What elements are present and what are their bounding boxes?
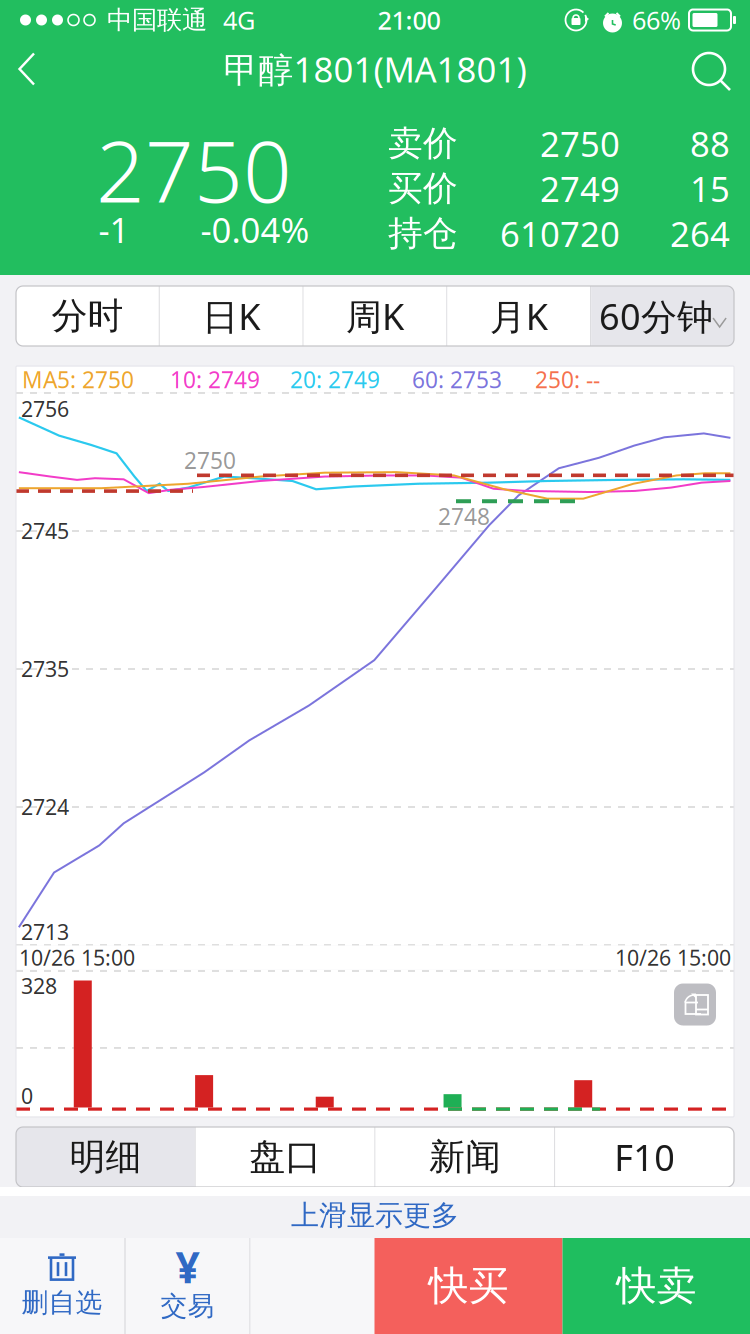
staticText: 甲醇1801(MA1801) [223,46,526,92]
staticText: 2756 [21,394,69,423]
staticText: 21:00 [377,3,440,37]
staticText: MA5: 2750 [22,364,134,394]
staticText: ¥ [175,1238,199,1295]
staticText: 盘口 [249,1135,321,1179]
button[interactable]: ¥ [125,1238,249,1334]
button[interactable]: 盘口 [196,1127,375,1187]
staticText: 卖价 [388,122,458,165]
staticText: -1 [98,206,129,252]
button[interactable]: 快买 [374,1238,562,1334]
staticText: 新闻 [429,1135,501,1179]
staticText: 2750 [96,113,292,226]
staticText: 60: 2753 [412,364,502,394]
staticText: 10/26 15:00 [19,943,135,972]
staticText: 2749 [540,165,620,211]
staticText: 月K [490,292,548,340]
staticText: 买价 [388,167,458,210]
staticText: F10 [614,1133,675,1181]
staticText: 明细 [69,1135,141,1179]
staticText: 10: 2749 [170,364,260,394]
staticText: 66% [632,3,681,37]
button[interactable]: 月K [447,286,590,346]
staticText: 10/26 15:00 [615,943,731,972]
staticText: 15 [690,165,730,211]
staticText: 2713 [21,917,69,946]
button[interactable]: Rotate to landscape [674,983,716,1025]
staticText: 2745 [21,516,69,545]
button[interactable]: 日K [160,286,303,346]
staticText: 250: -- [535,364,600,394]
button[interactable]: 上滑显示更多 [0,1196,750,1235]
staticText: 60分钟 [599,292,713,340]
staticText: 0 [21,1081,33,1110]
button[interactable]: Search [670,40,750,98]
staticText: 上滑显示更多 [291,1198,459,1233]
button[interactable]: F10 [555,1127,734,1187]
staticText: 2748 [438,501,490,531]
staticText: 周K [346,292,404,340]
staticText: 持仓 [388,212,458,255]
staticText: 2724 [21,792,69,821]
staticText: 4G [223,3,255,37]
button[interactable]: 删自选 [0,1238,124,1334]
staticText: 2750 [184,445,236,475]
button[interactable]: 分时 [16,286,159,346]
staticText: 610720 [500,210,620,256]
staticText: 2735 [21,654,69,683]
staticText: 328 [21,971,57,1000]
staticText: 88 [690,120,730,166]
staticText: 快买 [428,1261,508,1310]
staticText: 删自选 [21,1286,102,1319]
staticText: 快卖 [616,1261,696,1310]
staticText: 分时 [51,294,123,338]
button[interactable]: 明细 [16,1127,195,1187]
button[interactable]: 60分钟 [591,286,734,346]
button[interactable]: 快卖 [562,1238,750,1334]
staticText: 日K [202,292,260,340]
button[interactable]: 周K [304,286,446,346]
staticText: -0.04% [200,206,309,252]
staticText: 20: 2749 [290,364,380,394]
button[interactable]: 新闻 [375,1127,554,1187]
button[interactable]: Back [0,40,62,98]
staticText: 264 [670,210,730,256]
staticText: 中国联通 [107,4,207,35]
staticText: 2750 [540,120,620,166]
staticText: 交易 [160,1290,214,1322]
